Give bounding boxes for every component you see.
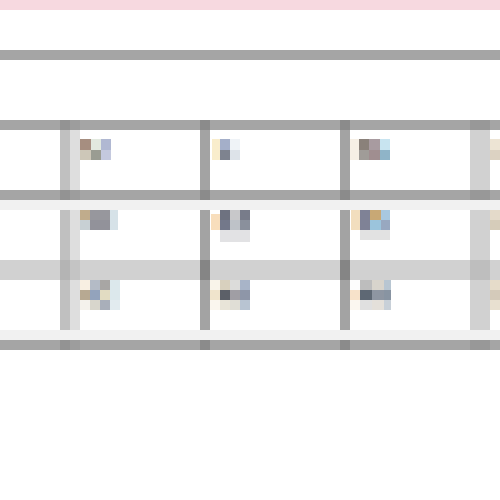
button[interactable]: Item 1 — [80, 130, 200, 190]
button[interactable]: Item 6 — [350, 200, 470, 260]
button[interactable]: Item 7 — [80, 280, 200, 340]
button[interactable]: Item 4 — [80, 200, 200, 260]
button[interactable]: Item 5 — [210, 200, 340, 260]
button[interactable]: Item 3 — [350, 130, 470, 190]
button[interactable]: Item 2 — [210, 130, 340, 190]
button[interactable]: Item 9 — [350, 280, 470, 340]
button[interactable]: Item 8 — [210, 280, 340, 340]
